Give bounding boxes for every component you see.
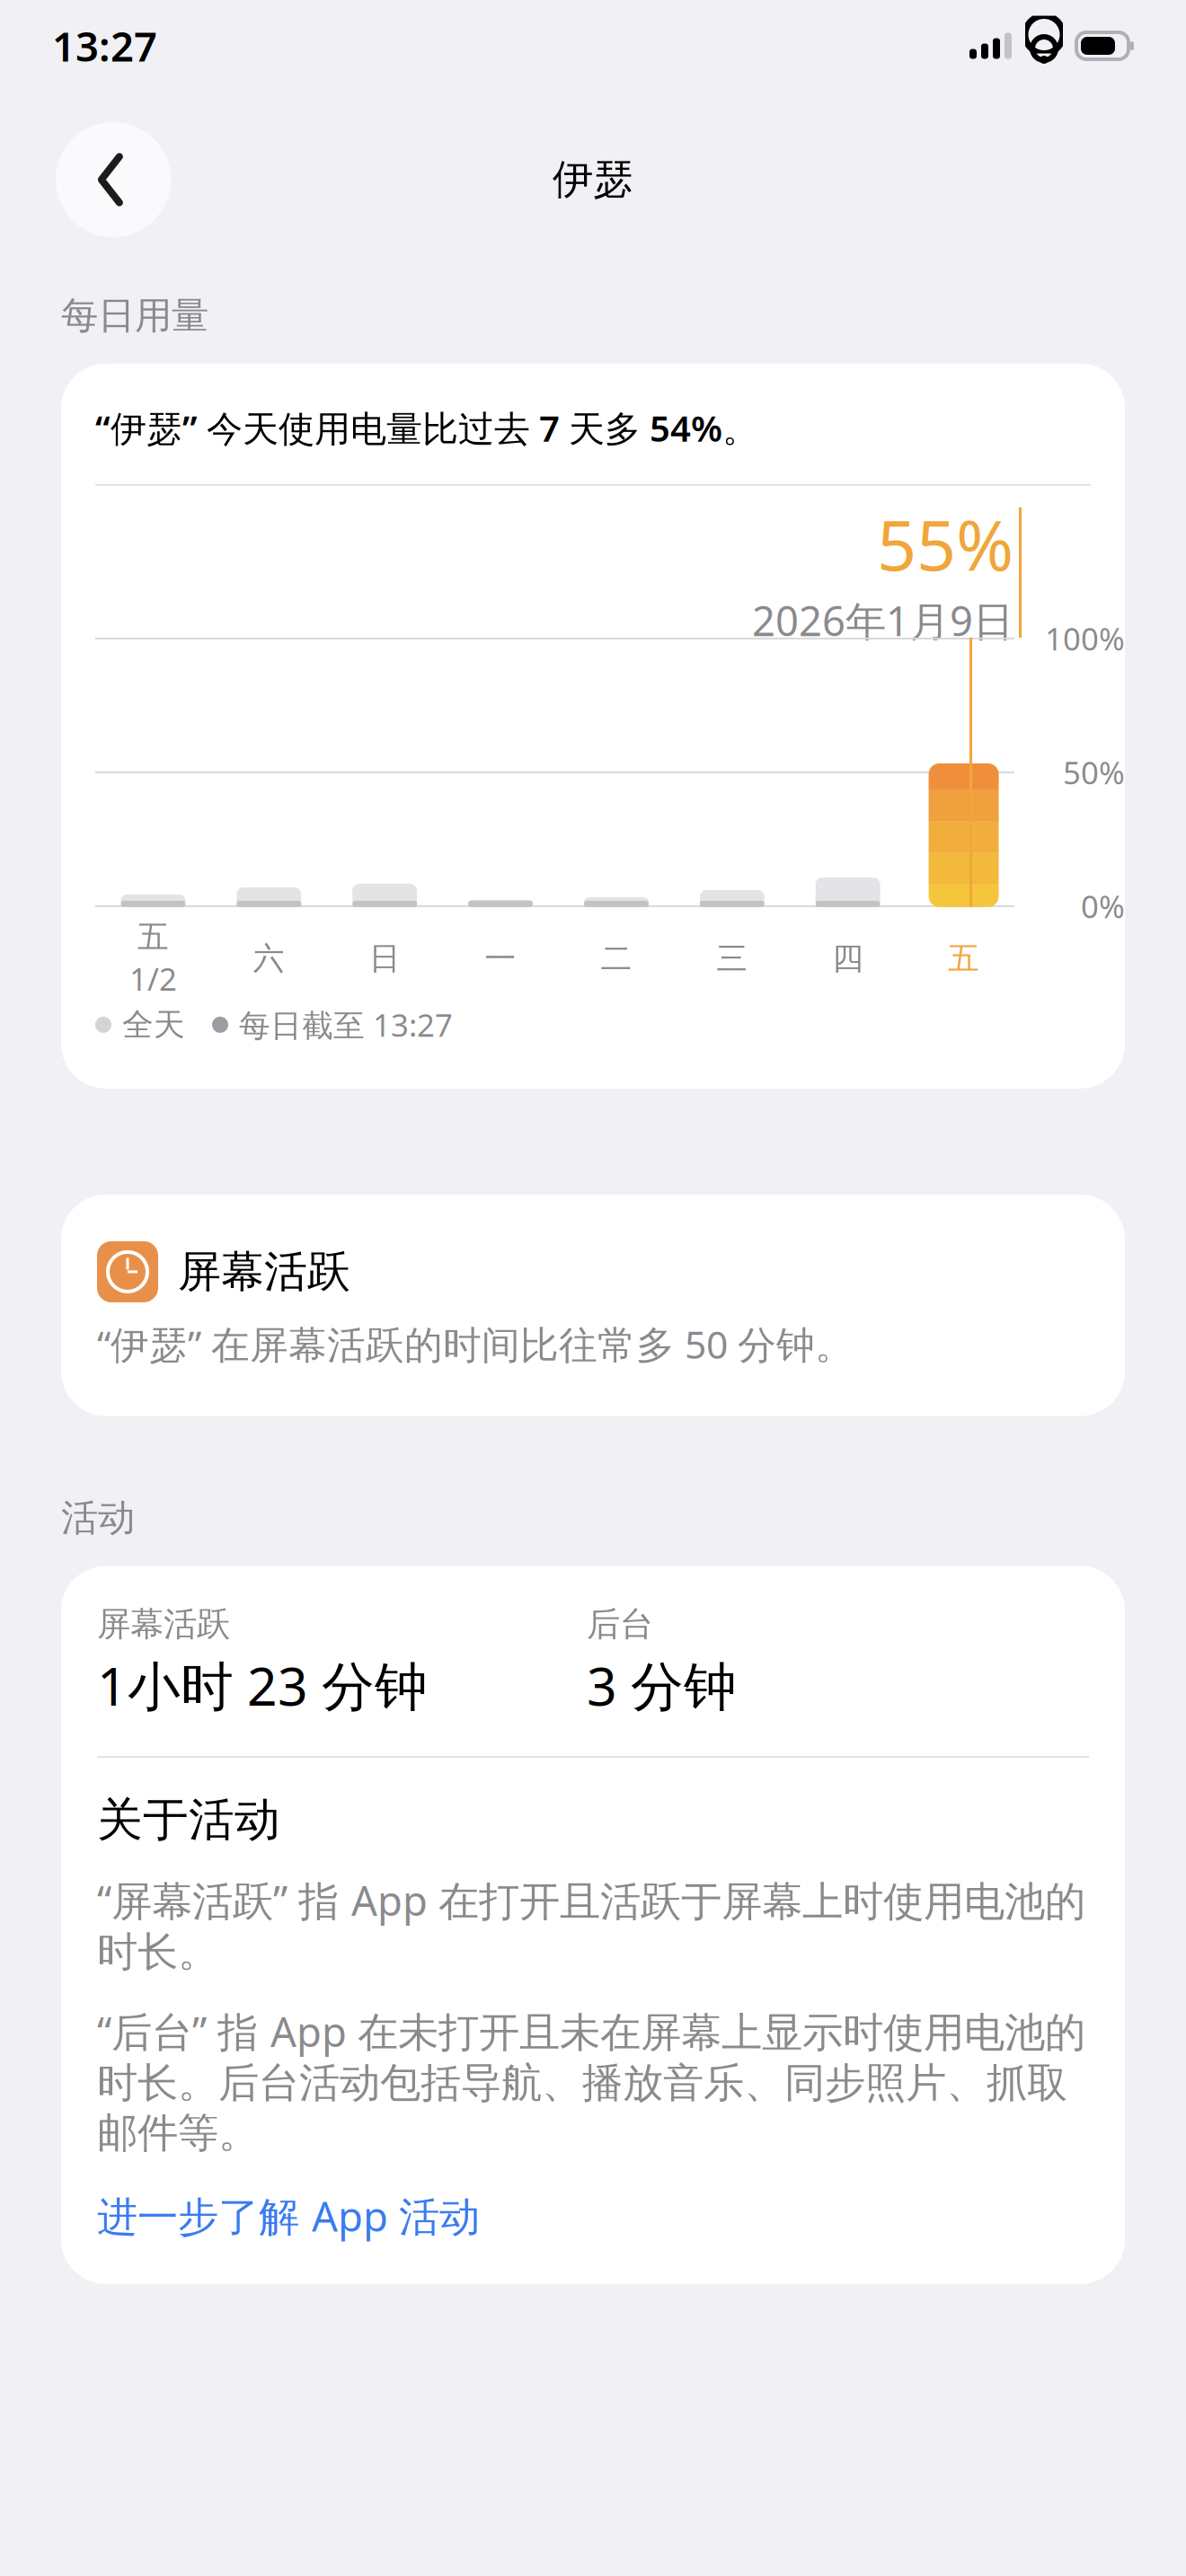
staticText: “屏幕活跃” 指 App 在打开且活跃于屏幕上时使用电池的时长。 — [97, 1873, 1085, 1977]
staticText: 伊瑟 — [553, 155, 633, 205]
staticText: 屏幕活跃 — [97, 1604, 230, 1645]
staticText: 0% — [1081, 886, 1125, 927]
staticText: 活动 — [61, 1495, 135, 1541]
staticText: 后台 — [587, 1604, 653, 1645]
staticText: 进一步了解 App 活动 — [97, 2189, 480, 2243]
staticText: 屏幕活跃 — [178, 1245, 350, 1298]
staticText: “伊瑟” 在屏幕活跃的时间比往常多 50 分钟。 — [97, 1318, 854, 1369]
button[interactable]: 返回 — [56, 122, 171, 237]
staticText: 日 — [369, 939, 400, 978]
staticText: 二 — [601, 939, 632, 978]
staticText: 2026年1月9日 — [752, 593, 1013, 647]
staticText: 四 — [832, 939, 864, 978]
staticText: 50% — [1063, 752, 1125, 793]
staticText: 1/2 — [129, 958, 177, 999]
staticText: 三 — [716, 939, 748, 978]
staticText: 六 — [253, 939, 285, 978]
staticText: 55% — [877, 498, 1013, 590]
staticText: 关于活动 — [97, 1792, 280, 1848]
staticText: 五 — [948, 939, 979, 978]
button[interactable]: 进一步了解 App 活动 — [61, 2158, 1125, 2284]
staticText: 每日截至 13:27 — [239, 1004, 453, 1045]
staticText: 五 — [137, 918, 169, 956]
staticText: 3 分钟 — [587, 1650, 737, 1720]
staticText: “伊瑟” 今天使用电量比过去 7 天多 54%。 — [95, 404, 758, 452]
staticText: 100% — [1045, 618, 1125, 659]
staticText: 一 — [485, 939, 516, 978]
staticText: 每日用量 — [61, 293, 208, 338]
staticText: “后台” 指 App 在未打开且未在屏幕上显示时使用电池的时长。后台活动包括导航… — [97, 2004, 1085, 2158]
staticText: 全天 — [122, 1006, 185, 1044]
staticText: 1小时 23 分钟 — [97, 1650, 428, 1720]
staticText: 13:27 — [52, 19, 157, 73]
